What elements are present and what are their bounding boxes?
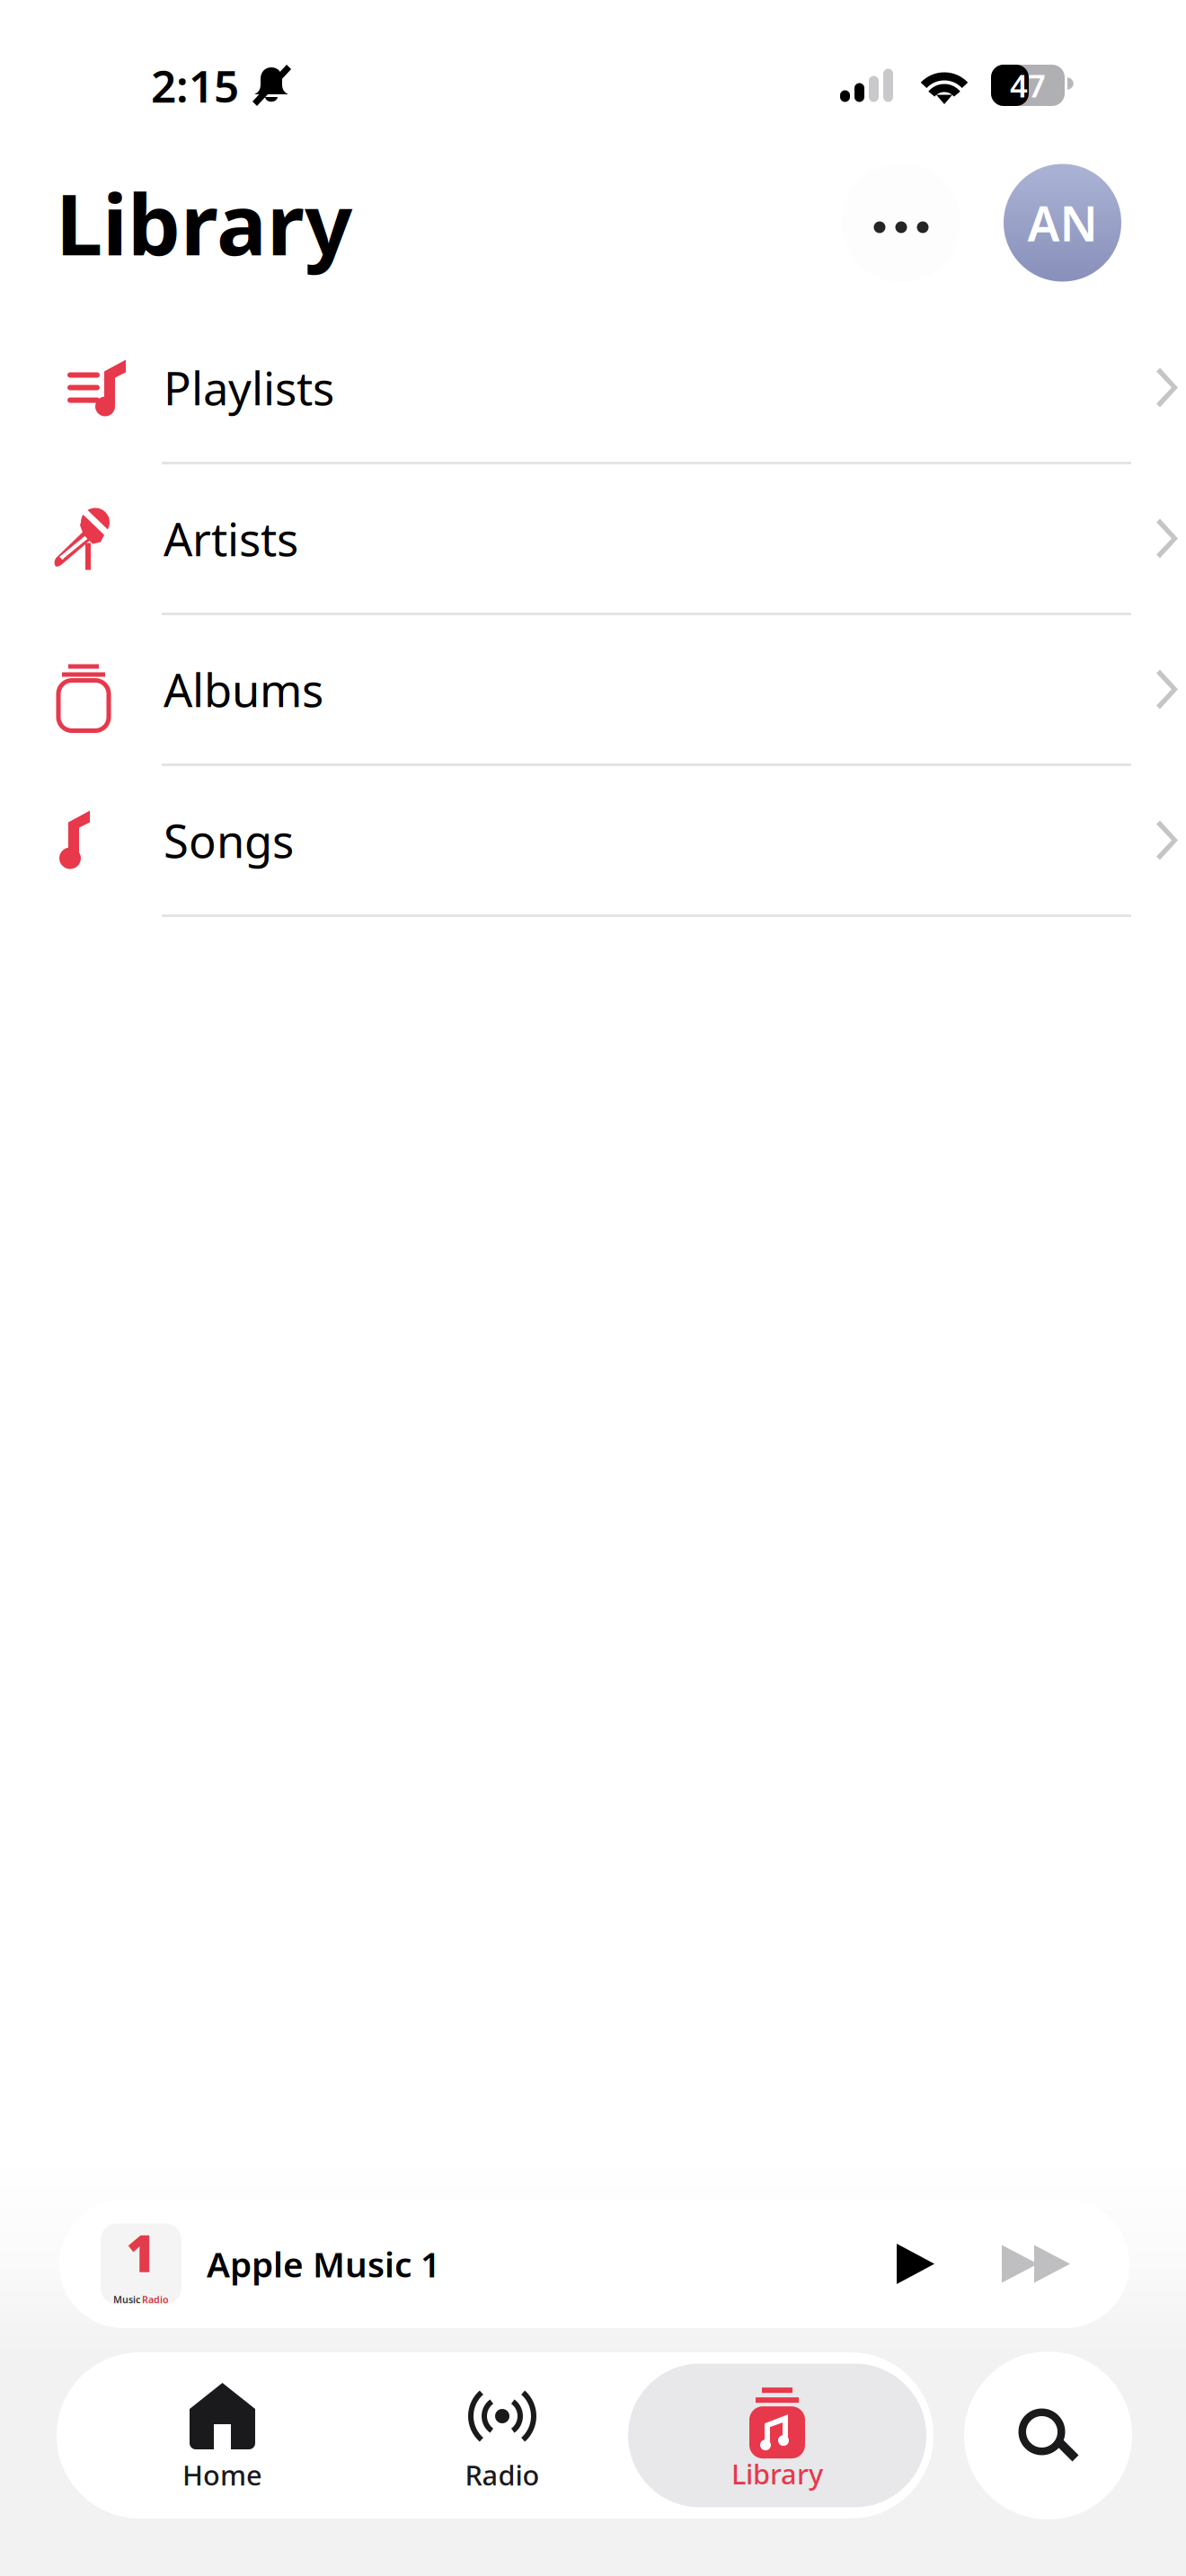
button[interactable]: Radio [376,2352,628,2519]
button[interactable]: Albums [0,615,1186,766]
button[interactable]: Account [1004,164,1121,282]
button[interactable]: Search [964,2351,1132,2519]
staticText: Radio [142,2293,169,2306]
staticText: Library [56,167,352,278]
staticText: Songs [164,810,294,871]
staticText: Radio [465,2457,540,2493]
button[interactable]: Songs [0,766,1186,917]
button[interactable]: Library [628,2364,926,2507]
staticText: Playlists [164,357,334,418]
button[interactable]: More options [842,163,960,282]
button[interactable]: Apple Music 1 artwork [101,2223,181,2304]
button[interactable]: Play [858,2206,973,2321]
staticText: Apple Music 1 [207,2241,440,2287]
staticText: 47 [1010,65,1046,106]
button[interactable]: Home [68,2352,376,2519]
staticText: Library [731,2455,823,2492]
button[interactable]: Playlists [0,313,1186,464]
staticText: Home [182,2457,262,2493]
staticText: 2:15 [151,56,239,115]
staticText: Albums [164,659,323,720]
button[interactable]: Artists [0,464,1186,615]
staticText: 1 [126,2219,156,2286]
staticText: Artists [164,508,298,569]
staticText: Music [113,2293,140,2306]
button[interactable]: Next track [973,2206,1099,2321]
staticText: AN [1027,191,1097,255]
